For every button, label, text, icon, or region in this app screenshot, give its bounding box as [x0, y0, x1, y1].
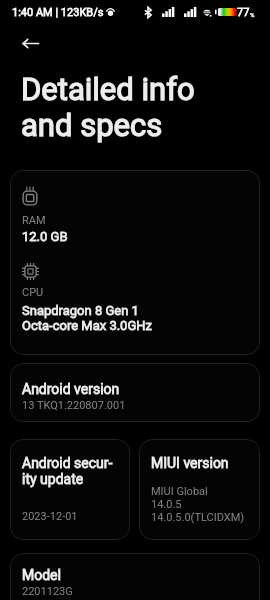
staticText: MIUI version — [151, 455, 229, 471]
staticText: 77 — [237, 6, 250, 19]
staticText: 2201123G — [22, 585, 73, 598]
staticText: Detailed info — [21, 71, 195, 107]
staticText: 1:40 AM | 123KB/s — [12, 6, 104, 19]
button[interactable]: Android version — [10, 363, 260, 422]
button[interactable]: Model — [10, 553, 260, 600]
staticText: Model — [22, 567, 61, 583]
staticText: 13 TKQ1.220807.001 — [22, 399, 126, 412]
staticText: 12.0 GB — [22, 229, 68, 244]
staticText: MIUI Global 14.0.5 14.0.5.0(TLCIDXM) — [151, 485, 245, 524]
staticText: Snapdragon 8 Gen 1 — [22, 303, 139, 318]
staticText: RAM — [22, 214, 46, 227]
staticText: Octa-core Max 3.0GHz — [22, 318, 152, 333]
staticText: Android secur- ity update — [22, 455, 113, 487]
staticText: CPU — [22, 286, 44, 299]
staticText: Android version — [22, 381, 120, 397]
staticText: 2023-12-01 — [22, 510, 78, 523]
button[interactable]: MIUI version — [139, 439, 260, 540]
staticText: and specs — [21, 107, 163, 143]
button[interactable]: RAM — [10, 170, 260, 355]
staticText: % — [250, 11, 255, 18]
button[interactable]: Android secur- ity update — [10, 439, 130, 540]
button[interactable]: Back — [12, 25, 48, 61]
